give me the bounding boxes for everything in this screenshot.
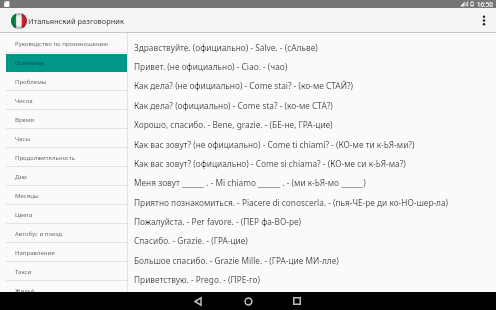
staticText: Спасибо. - Grazie. - (ГРА-цие) <box>134 235 248 246</box>
staticText: Меня зовут ______ . - Mi chiamo ______ .… <box>134 177 366 188</box>
button[interactable]: Как вас зовут? (официально) - Come si ch… <box>128 154 496 173</box>
staticText: Руководство по произношению <box>15 40 109 48</box>
button[interactable]: Back <box>178 292 218 310</box>
staticText: Жильё <box>15 287 35 295</box>
staticText: Дни <box>15 173 27 181</box>
button[interactable]: Меня зовут ______ . - Mi chiamo ______ .… <box>128 173 496 192</box>
button[interactable]: Дни <box>0 167 127 186</box>
staticText: Цвета <box>15 211 33 219</box>
staticText: Привет. (не официально) - Ciao. - (чао) <box>134 61 288 72</box>
button[interactable]: Пожалуйста. - Per favore. - (ПЕР фа-ВО-р… <box>128 212 496 231</box>
staticText: Приветствую. - Prego. - (ПРЕ-го) <box>134 274 260 285</box>
staticText: Часы <box>15 135 31 143</box>
staticText: Приятно познакомиться. - Piacere di cono… <box>134 197 449 208</box>
button[interactable]: Привет. (не официально) - Ciao. - (чао) <box>128 57 496 76</box>
staticText: Как дела? (не официально) - Come stai? -… <box>134 80 354 91</box>
button[interactable]: Руководство по произношению <box>0 34 127 53</box>
button[interactable]: Основное <box>0 53 127 72</box>
staticText: Продолжительность <box>15 154 76 162</box>
staticText: Большое спасибо. - Grazie Mille. - (ГРА-… <box>134 255 339 266</box>
button[interactable]: Время <box>0 110 127 129</box>
button[interactable]: Recents <box>277 292 317 310</box>
button[interactable]: Направления <box>0 243 127 262</box>
button[interactable]: Как дела? (не официально) - Come stai? -… <box>128 76 496 95</box>
staticText: Основное <box>15 59 44 67</box>
staticText: Здравствуйте. (официально) - Salve. - (с… <box>134 42 318 53</box>
staticText: Числа <box>15 97 33 105</box>
staticText: Автобус и поезд <box>15 230 62 238</box>
button[interactable]: Продолжительность <box>0 148 127 167</box>
button[interactable]: Автобус и поезд <box>0 224 127 243</box>
button[interactable]: Цвета <box>0 205 127 224</box>
staticText: Время <box>15 116 35 124</box>
button[interactable]: Числа <box>0 91 127 110</box>
staticText: Как дела? (официально) - Come sta? - (ко… <box>134 100 333 111</box>
button[interactable]: Спасибо. - Grazie. - (ГРА-цие) <box>128 231 496 250</box>
button[interactable]: Приятно познакомиться. - Piacere di cono… <box>128 192 496 212</box>
button[interactable]: Такси <box>0 262 127 281</box>
staticText: Хорошо, спасибо. - Bene, grazie. - (БЕ-н… <box>134 119 333 130</box>
button[interactable]: More options <box>472 8 496 33</box>
staticText: Как вас зовут? (официально) - Come si ch… <box>134 158 406 169</box>
staticText: Месяцы <box>15 192 39 200</box>
staticText: Проблемы <box>15 78 47 86</box>
button[interactable]: Приветствую. - Prego. - (ПРЕ-го) <box>128 270 496 289</box>
button[interactable]: Как дела? (официально) - Come sta? - (ко… <box>128 95 496 115</box>
staticText: 16:50 <box>477 0 493 8</box>
button[interactable]: Часы <box>0 129 127 148</box>
button[interactable]: Проблемы <box>0 72 127 91</box>
staticText: Итальянский разговорник <box>28 16 125 26</box>
button[interactable]: Хорошо, спасибо. - Bene, grazie. - (БЕ-н… <box>128 115 496 134</box>
button[interactable]: Месяцы <box>0 186 127 205</box>
button[interactable]: Home <box>228 292 268 310</box>
button[interactable]: Большое спасибо. - Grazie Mille. - (ГРА-… <box>128 250 496 270</box>
staticText: Как вас зовут? (не официально) - Come ti… <box>134 139 415 150</box>
button[interactable]: Как вас зовут? (не официально) - Come ti… <box>128 134 496 154</box>
button[interactable]: Здравствуйте. (официально) - Salve. - (с… <box>128 37 496 57</box>
staticText: Такси <box>15 268 32 276</box>
staticText: Пожалуйста. - Per favore. - (ПЕР фа-ВО-р… <box>134 216 302 227</box>
staticText: Направления <box>15 249 55 257</box>
button[interactable]: Жильё <box>0 281 127 300</box>
